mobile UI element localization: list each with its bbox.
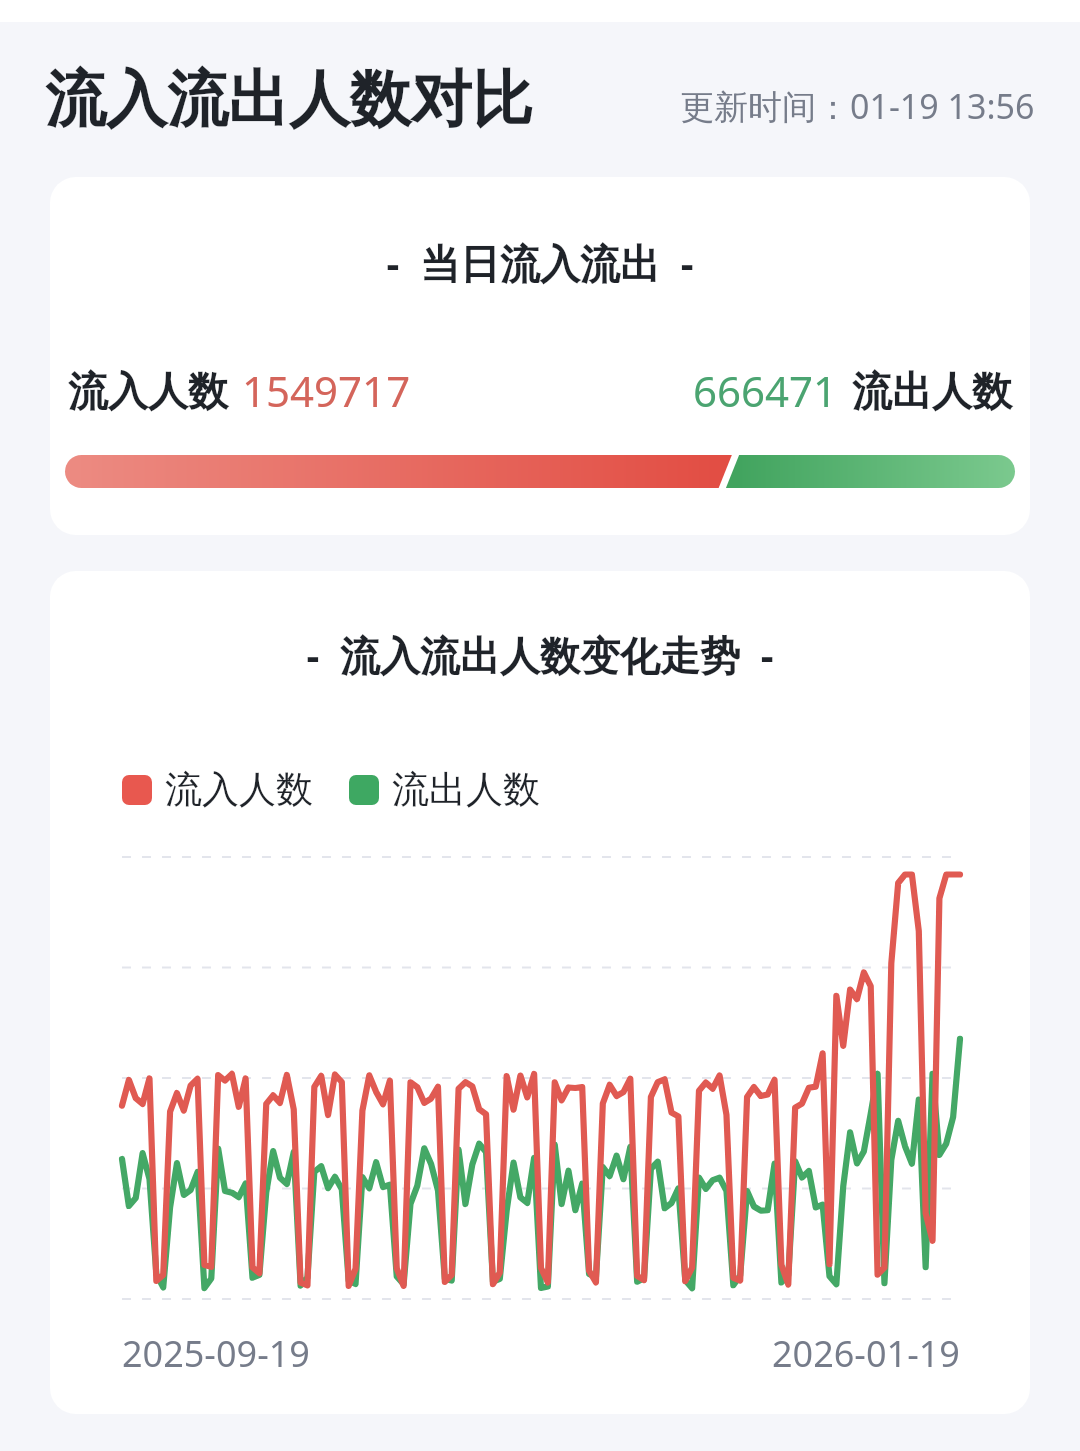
staticText: 流入人数 xyxy=(68,366,228,416)
staticText: 666471 xyxy=(693,362,838,419)
staticText: 流出人数 xyxy=(392,766,540,813)
staticText: - 流入流出人数变化走势 - xyxy=(50,627,1030,682)
staticText: - 当日流入流出 - xyxy=(50,235,1030,290)
staticText: 更新时间：01-19 13:56 xyxy=(680,83,1035,129)
staticText: 流出人数 xyxy=(852,366,1012,416)
staticText: 1549717 xyxy=(242,362,411,419)
staticText: 2026-01-19 xyxy=(772,1329,960,1378)
button[interactable]: - 流入流出人数变化走势 - xyxy=(50,571,1030,1414)
button[interactable]: - 当日流入流出 - xyxy=(50,177,1030,535)
staticText: 流入流出人数对比 xyxy=(45,61,533,138)
staticText: 2025-09-19 xyxy=(122,1329,310,1378)
staticText: 流入人数 xyxy=(165,766,313,813)
